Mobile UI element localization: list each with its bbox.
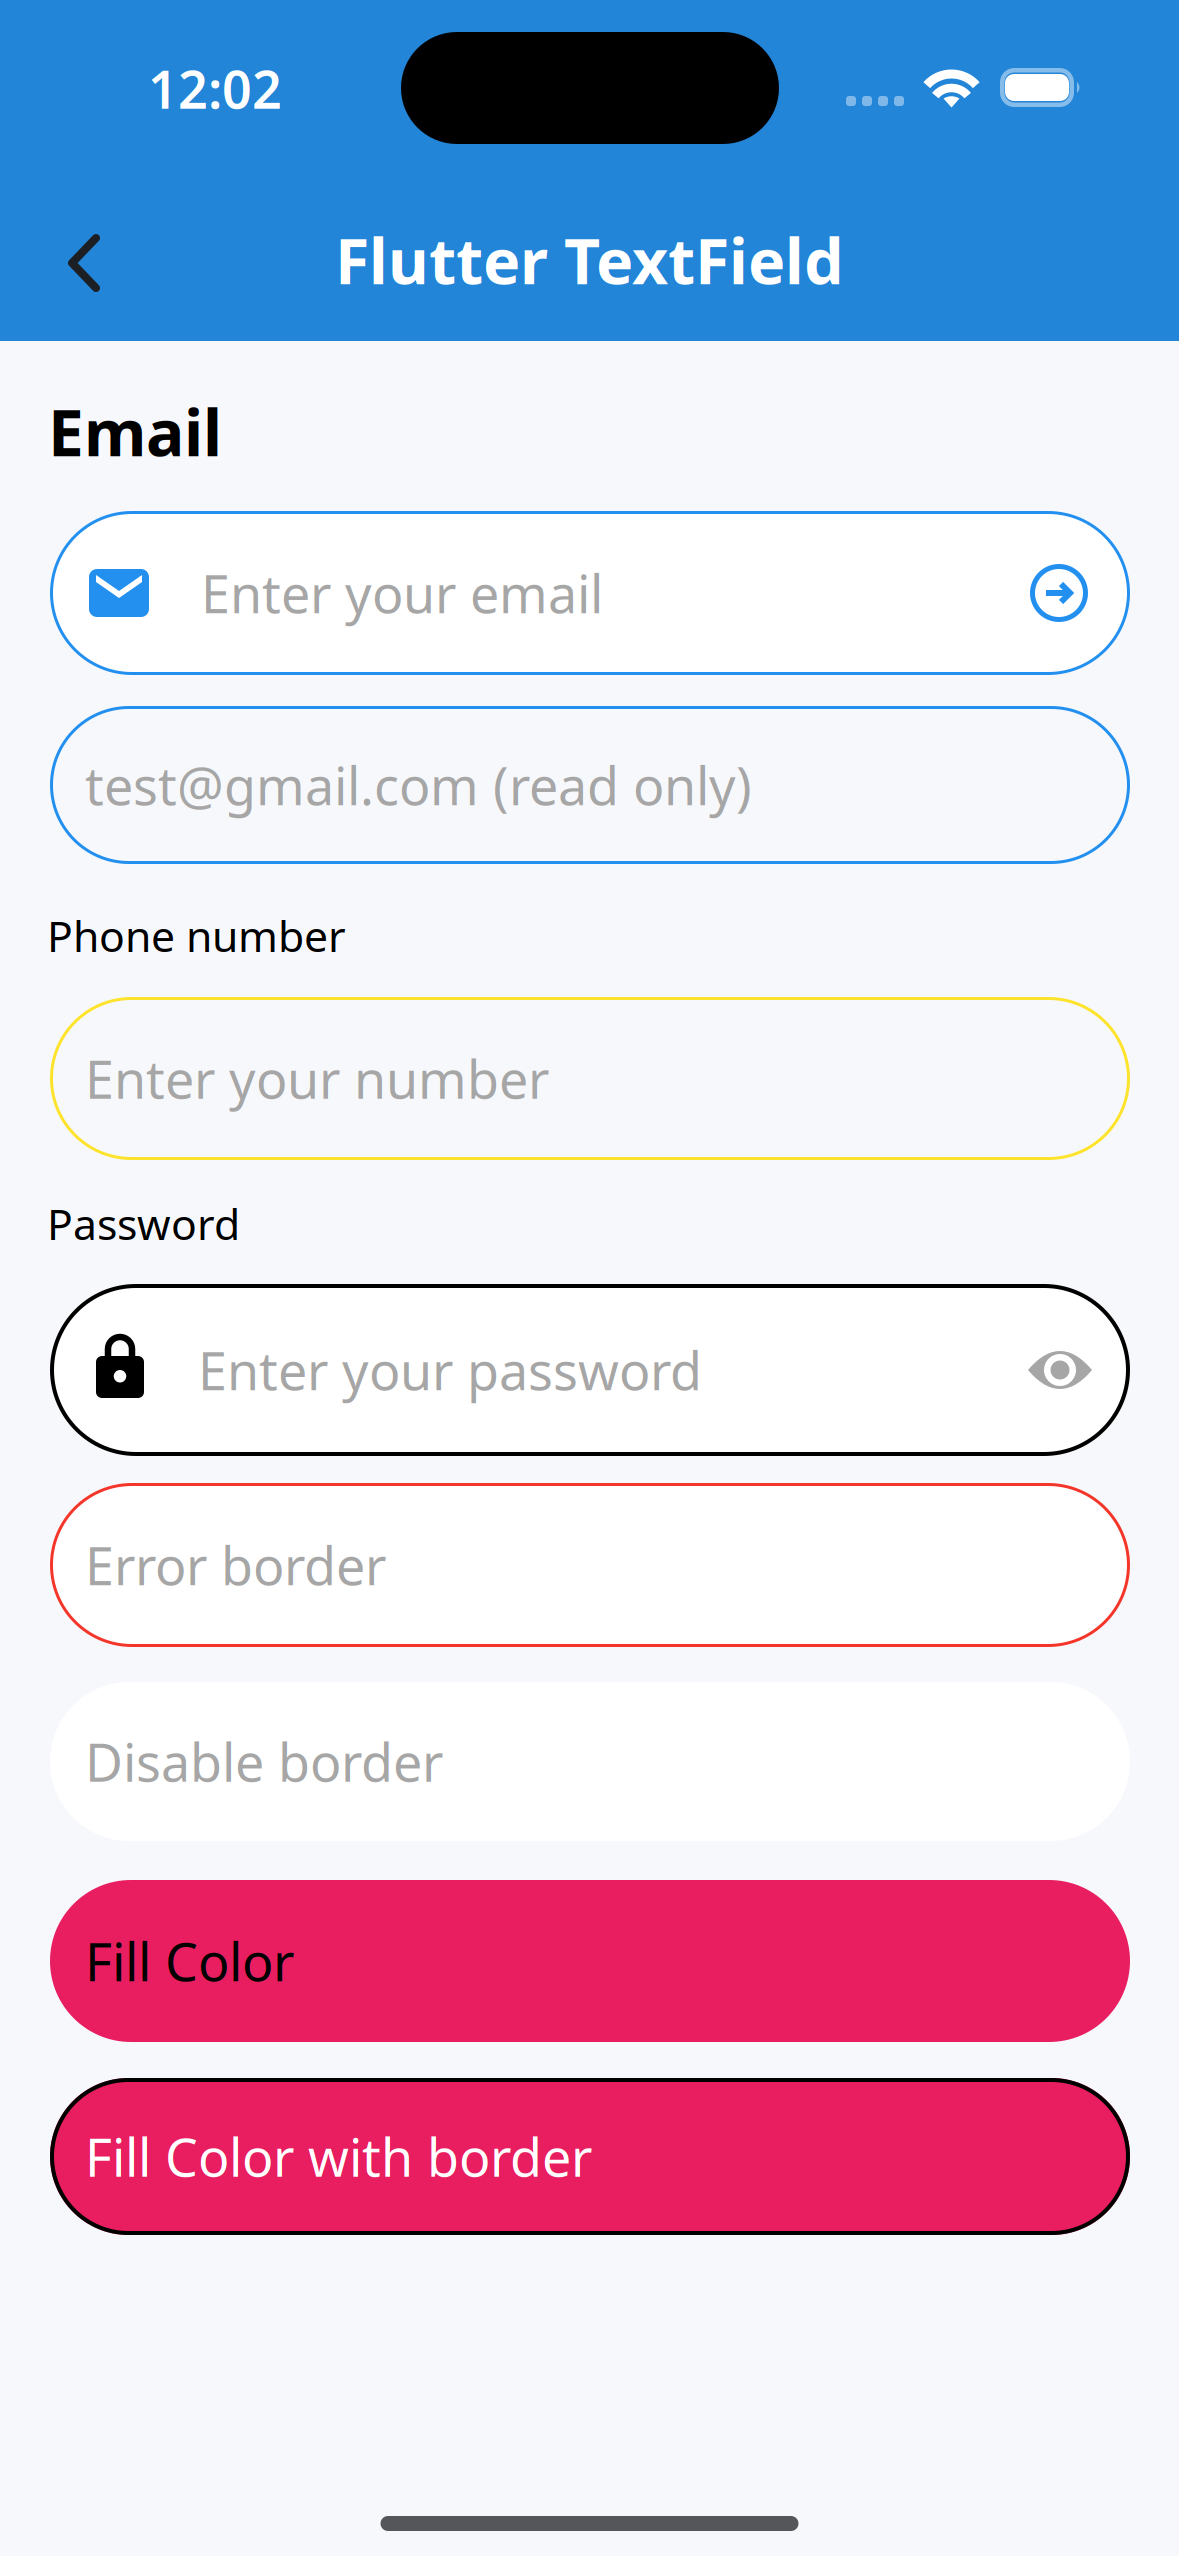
button[interactable]: Fill Color with border [50,2078,1130,2235]
staticText: 12:02 [148,54,282,123]
staticText: Disable border [85,1727,443,1796]
staticText: Error border [85,1530,386,1600]
staticText: Phone number [47,907,346,964]
button[interactable]: Error border [50,1483,1130,1647]
button[interactable]: Fill Color [50,1880,1130,2042]
staticText: Fill Color [85,1926,294,1996]
staticText: Enter your email [201,558,603,628]
staticText: Password [47,1195,240,1252]
staticText: Flutter TextField [335,218,844,302]
button[interactable]: Back [30,209,138,317]
button[interactable]: Enter your number [50,997,1130,1160]
staticText: Fill Color with border [85,2122,592,2191]
staticText: Email [48,389,222,474]
staticText: Enter your number [85,1044,549,1113]
button[interactable]: Enter your email [50,511,1130,675]
button[interactable]: Show password [1015,1330,1105,1410]
staticText: Enter your password [198,1335,702,1405]
staticText: test@gmail.com (read only) [85,750,752,820]
button[interactable]: Submit email [1016,550,1102,636]
button[interactable]: Enter your password [50,1284,1130,1456]
button[interactable]: test@gmail.com (read only) [50,706,1130,864]
